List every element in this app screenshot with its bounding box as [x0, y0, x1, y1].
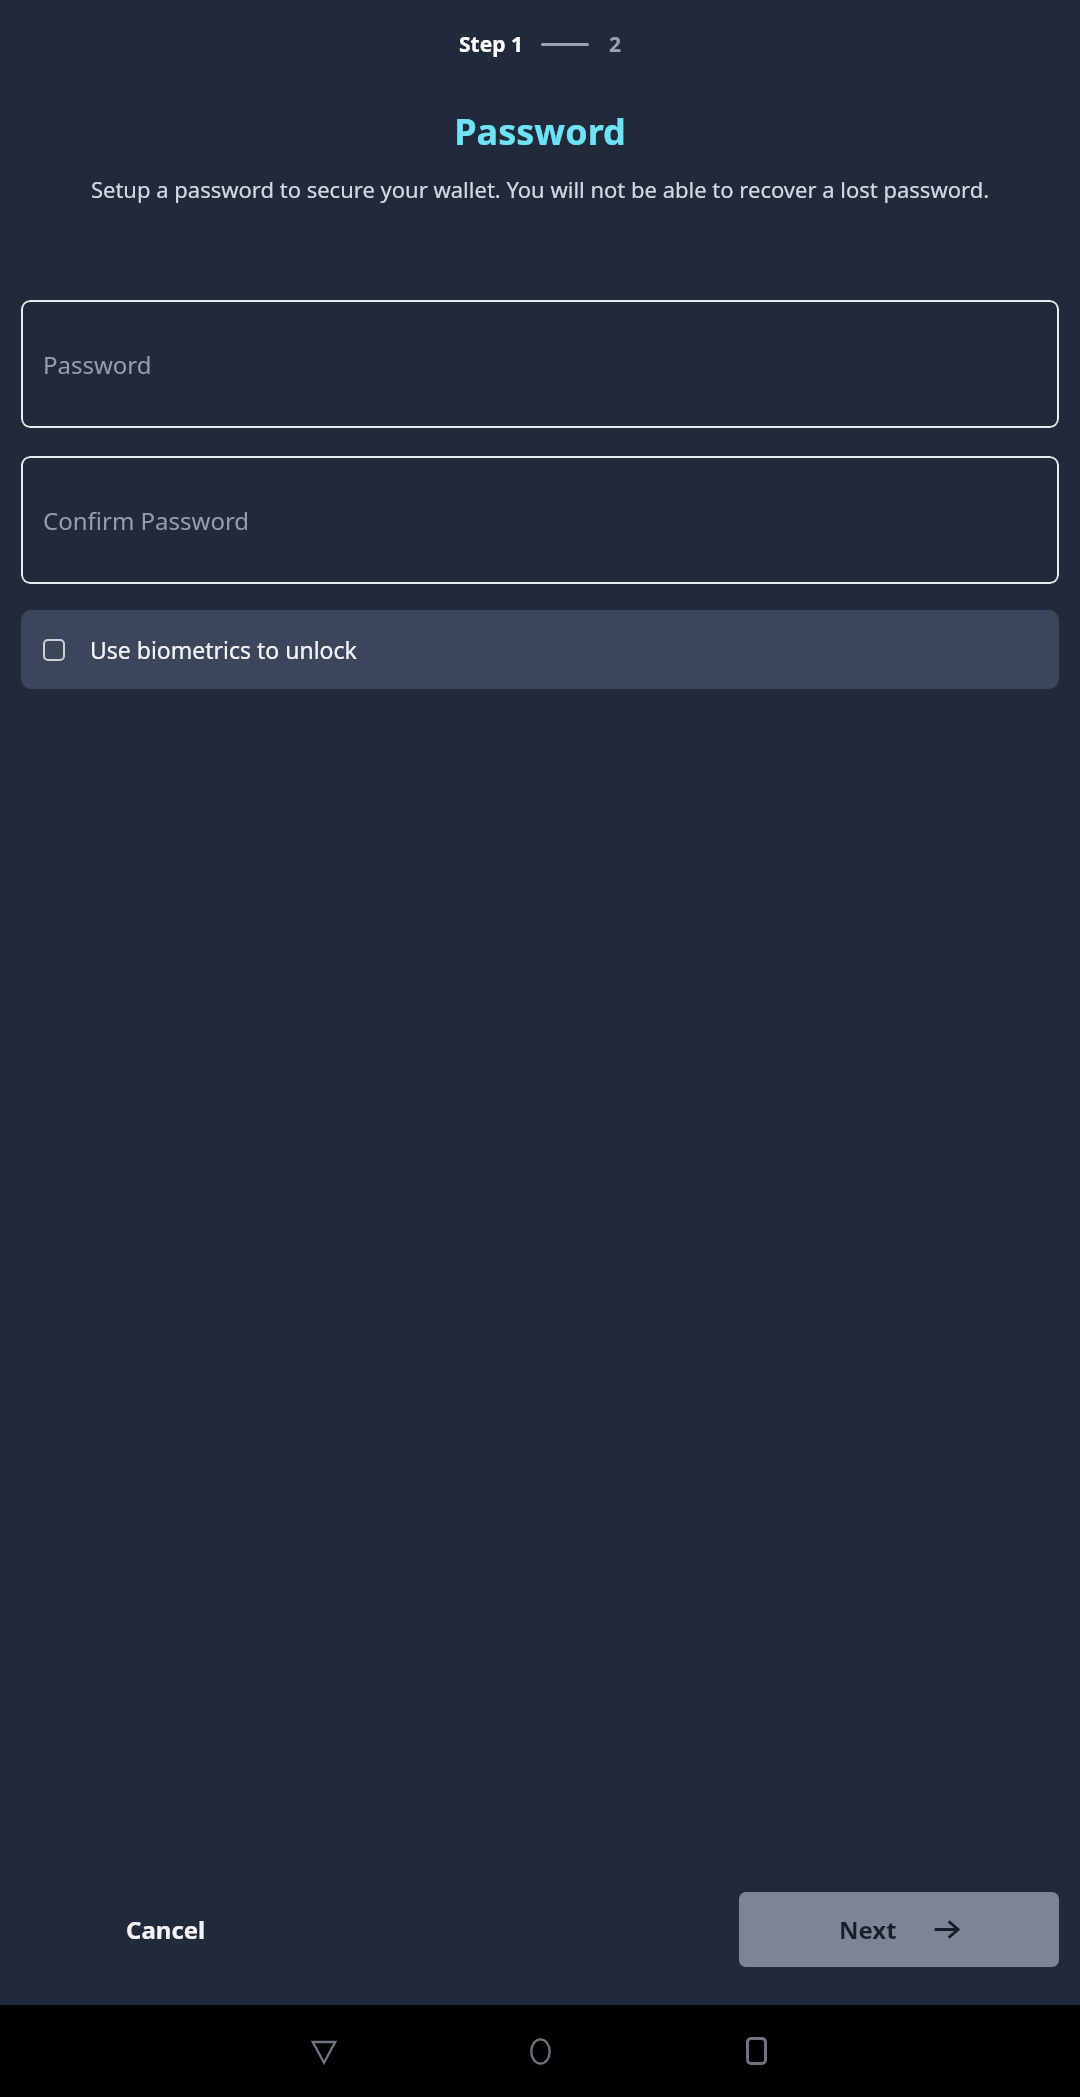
staticText: Cancel [126, 1913, 206, 1946]
staticText: Confirm Password [43, 504, 250, 537]
staticText: Setup a password to secure your wallet. … [30, 174, 1050, 204]
button[interactable]: Use biometrics to unlock [21, 610, 1059, 689]
staticText: 2 [609, 30, 622, 59]
button[interactable]: Password [21, 300, 1059, 428]
staticText: Password [0, 107, 1080, 156]
button[interactable]: Cancel [106, 1899, 226, 1960]
staticText: Password [43, 348, 152, 381]
staticText: Next [839, 1913, 897, 1946]
button[interactable]: Home [432, 2005, 648, 2097]
button[interactable]: Confirm Password [21, 456, 1059, 584]
staticText: Step 1 [459, 30, 523, 59]
button[interactable]: Back [216, 2005, 432, 2097]
staticText: Use biometrics to unlock [90, 634, 357, 665]
button[interactable]: 2 [609, 30, 622, 59]
button[interactable]: Step 1 [459, 30, 523, 59]
button[interactable]: Next [739, 1892, 1059, 1967]
button[interactable]: Recent apps [648, 2005, 864, 2097]
